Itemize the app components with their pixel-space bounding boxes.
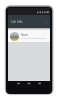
other: Navigation keys — [6, 7, 52, 94]
staticText: Name — [21, 33, 29, 37]
staticText: Call Utils — [11, 20, 23, 24]
button[interactable]: More options — [44, 17, 49, 26]
button[interactable]: Name — [8, 30, 50, 42]
